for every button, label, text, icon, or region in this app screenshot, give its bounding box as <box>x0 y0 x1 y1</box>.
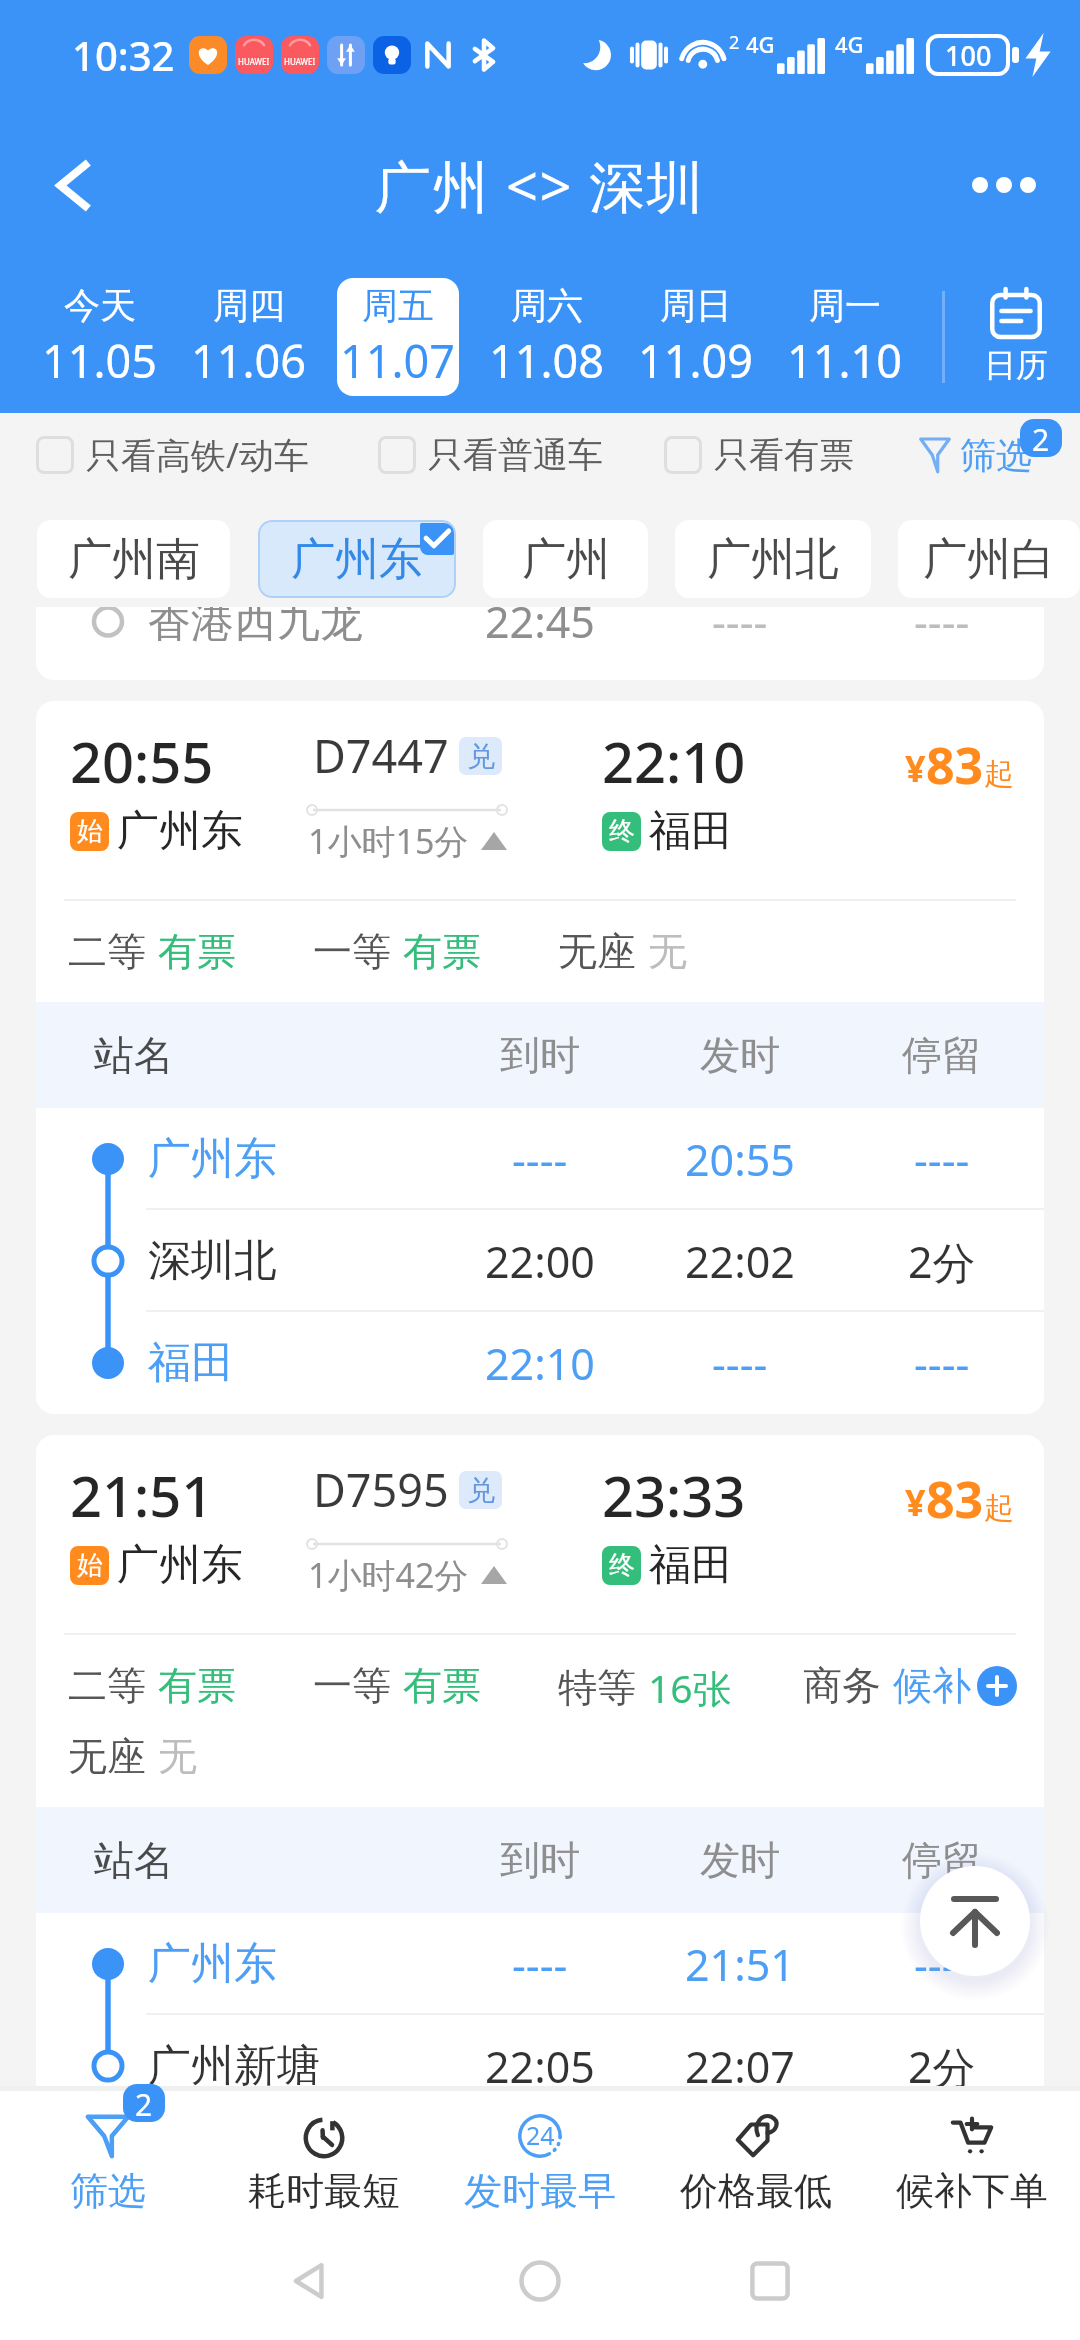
staticText: 到时 <box>500 1835 580 1885</box>
staticText: 11.07 <box>340 330 456 391</box>
button[interactable]: 周五 <box>337 278 459 396</box>
staticText: 无座 <box>68 1732 146 1781</box>
staticText: ---- <box>512 1130 568 1189</box>
staticText: ---- <box>712 607 768 651</box>
button[interactable]: 20:55 <box>36 701 1044 1414</box>
staticText: 100 <box>945 37 992 74</box>
staticText: 始 <box>77 1549 103 1582</box>
button[interactable]: 只看有票 <box>664 419 854 491</box>
button[interactable]: 耗时最短 <box>216 2091 432 2221</box>
staticText: 到时 <box>500 1030 580 1080</box>
button[interactable]: Calendar <box>952 260 1080 413</box>
staticText: 发时 <box>700 1030 780 1080</box>
staticText: ---- <box>914 1935 970 1994</box>
staticText: 20:55 <box>685 1130 795 1189</box>
button[interactable]: 广州北 <box>675 520 871 598</box>
staticText: 20:55 <box>70 723 214 799</box>
staticText: 兑 <box>467 1473 495 1508</box>
staticText: ---- <box>914 1334 970 1393</box>
button[interactable]: More options <box>956 145 1052 225</box>
button[interactable]: 周六 <box>486 278 608 396</box>
staticText: 4G <box>746 29 775 59</box>
staticText: D7595 <box>313 1459 449 1520</box>
button[interactable]: 只看高铁/动车 <box>36 419 310 491</box>
staticText: 23:33 <box>602 1457 746 1533</box>
button[interactable]: 广州 <box>483 520 648 598</box>
staticText: 4G <box>835 29 864 59</box>
staticText: 终 <box>609 1549 635 1582</box>
staticText: 无座 <box>558 927 636 976</box>
staticText: 22:05 <box>485 2037 595 2096</box>
staticText: 2 <box>1032 419 1050 457</box>
staticText: 站名 <box>94 1030 174 1080</box>
button[interactable]: 今天 <box>39 278 161 396</box>
button[interactable]: Home <box>505 2246 575 2316</box>
staticText: D7447 <box>313 725 449 786</box>
staticText: 二等 <box>68 927 146 976</box>
staticText: 终 <box>609 815 635 848</box>
button[interactable]: 筛选 <box>918 420 1032 490</box>
button[interactable]: 24 <box>432 2091 648 2221</box>
button[interactable]: Recents <box>735 2246 805 2316</box>
staticText: 广州东 <box>117 805 243 858</box>
staticText: 广州南 <box>68 532 200 587</box>
staticText: ---- <box>712 1334 768 1393</box>
staticText: 11.06 <box>191 330 307 391</box>
staticText: 福田 <box>649 1539 733 1592</box>
button[interactable]: Scroll to top <box>920 1866 1030 1976</box>
staticText: 只看普通车 <box>428 433 603 477</box>
staticText: 83 <box>926 731 984 799</box>
staticText: 周一 <box>809 283 881 328</box>
staticText: 广州东 <box>148 1132 277 1186</box>
staticText: 周六 <box>511 283 583 328</box>
staticText: 广州北 <box>707 532 839 587</box>
button[interactable]: 候补下单 <box>864 2091 1080 2221</box>
staticText: 一等 <box>313 927 391 976</box>
staticText: 广州东 <box>148 1937 277 1991</box>
staticText: 22:07 <box>685 2037 795 2096</box>
staticText: 周日 <box>660 283 732 328</box>
staticText: 2分 <box>908 1232 976 1291</box>
staticText: 广州新塘 <box>148 2039 320 2093</box>
button[interactable]: 2 <box>0 2091 216 2221</box>
staticText: 二等 <box>68 1661 146 1710</box>
staticText: 11.09 <box>638 330 754 391</box>
staticText: 16张 <box>648 1661 732 1714</box>
staticText: 候补下单 <box>896 2167 1048 2215</box>
button[interactable]: 广州东 <box>258 520 456 598</box>
staticText: 2 <box>729 30 740 55</box>
button[interactable]: Back <box>34 141 112 229</box>
staticText: 21:51 <box>70 1457 214 1533</box>
staticText: 有票 <box>403 1661 481 1710</box>
staticText: 有票 <box>158 927 236 976</box>
staticText: 有票 <box>158 1661 236 1710</box>
staticText: 周五 <box>362 283 434 328</box>
staticText: 始 <box>77 815 103 848</box>
staticText: 一等 <box>313 1661 391 1710</box>
button[interactable]: 广州南 <box>37 520 230 598</box>
staticText: 价格最低 <box>680 2167 832 2215</box>
button[interactable]: 周四 <box>188 278 310 396</box>
button[interactable]: 香港西九龙 <box>36 607 1044 680</box>
staticText: 无 <box>648 927 687 976</box>
staticText: 特等 <box>558 1663 636 1712</box>
button[interactable]: 广州白 <box>898 520 1080 598</box>
staticText: 24 <box>526 2118 555 2152</box>
staticText: 发时 <box>700 1835 780 1885</box>
staticText: 广州 <> 深圳 <box>375 147 705 223</box>
staticText: 商务 <box>803 1661 881 1710</box>
button[interactable]: 只看普通车 <box>378 419 603 491</box>
button[interactable]: 价格最低 <box>648 2091 864 2221</box>
button[interactable]: 周日 <box>635 278 757 396</box>
staticText: 起 <box>984 1489 1014 1527</box>
staticText: 候补 <box>893 1661 971 1710</box>
staticText: ---- <box>512 1935 568 1994</box>
staticText: ¥ <box>905 744 926 793</box>
staticText: 周四 <box>213 283 285 328</box>
button[interactable]: 21:51 <box>36 1435 1044 2117</box>
button[interactable]: Back <box>275 2246 345 2316</box>
staticText: 今天 <box>64 283 136 328</box>
button[interactable]: 周一 <box>784 278 906 396</box>
staticText: 2分 <box>908 2037 976 2096</box>
staticText: 1小时42分 <box>308 1552 469 1598</box>
